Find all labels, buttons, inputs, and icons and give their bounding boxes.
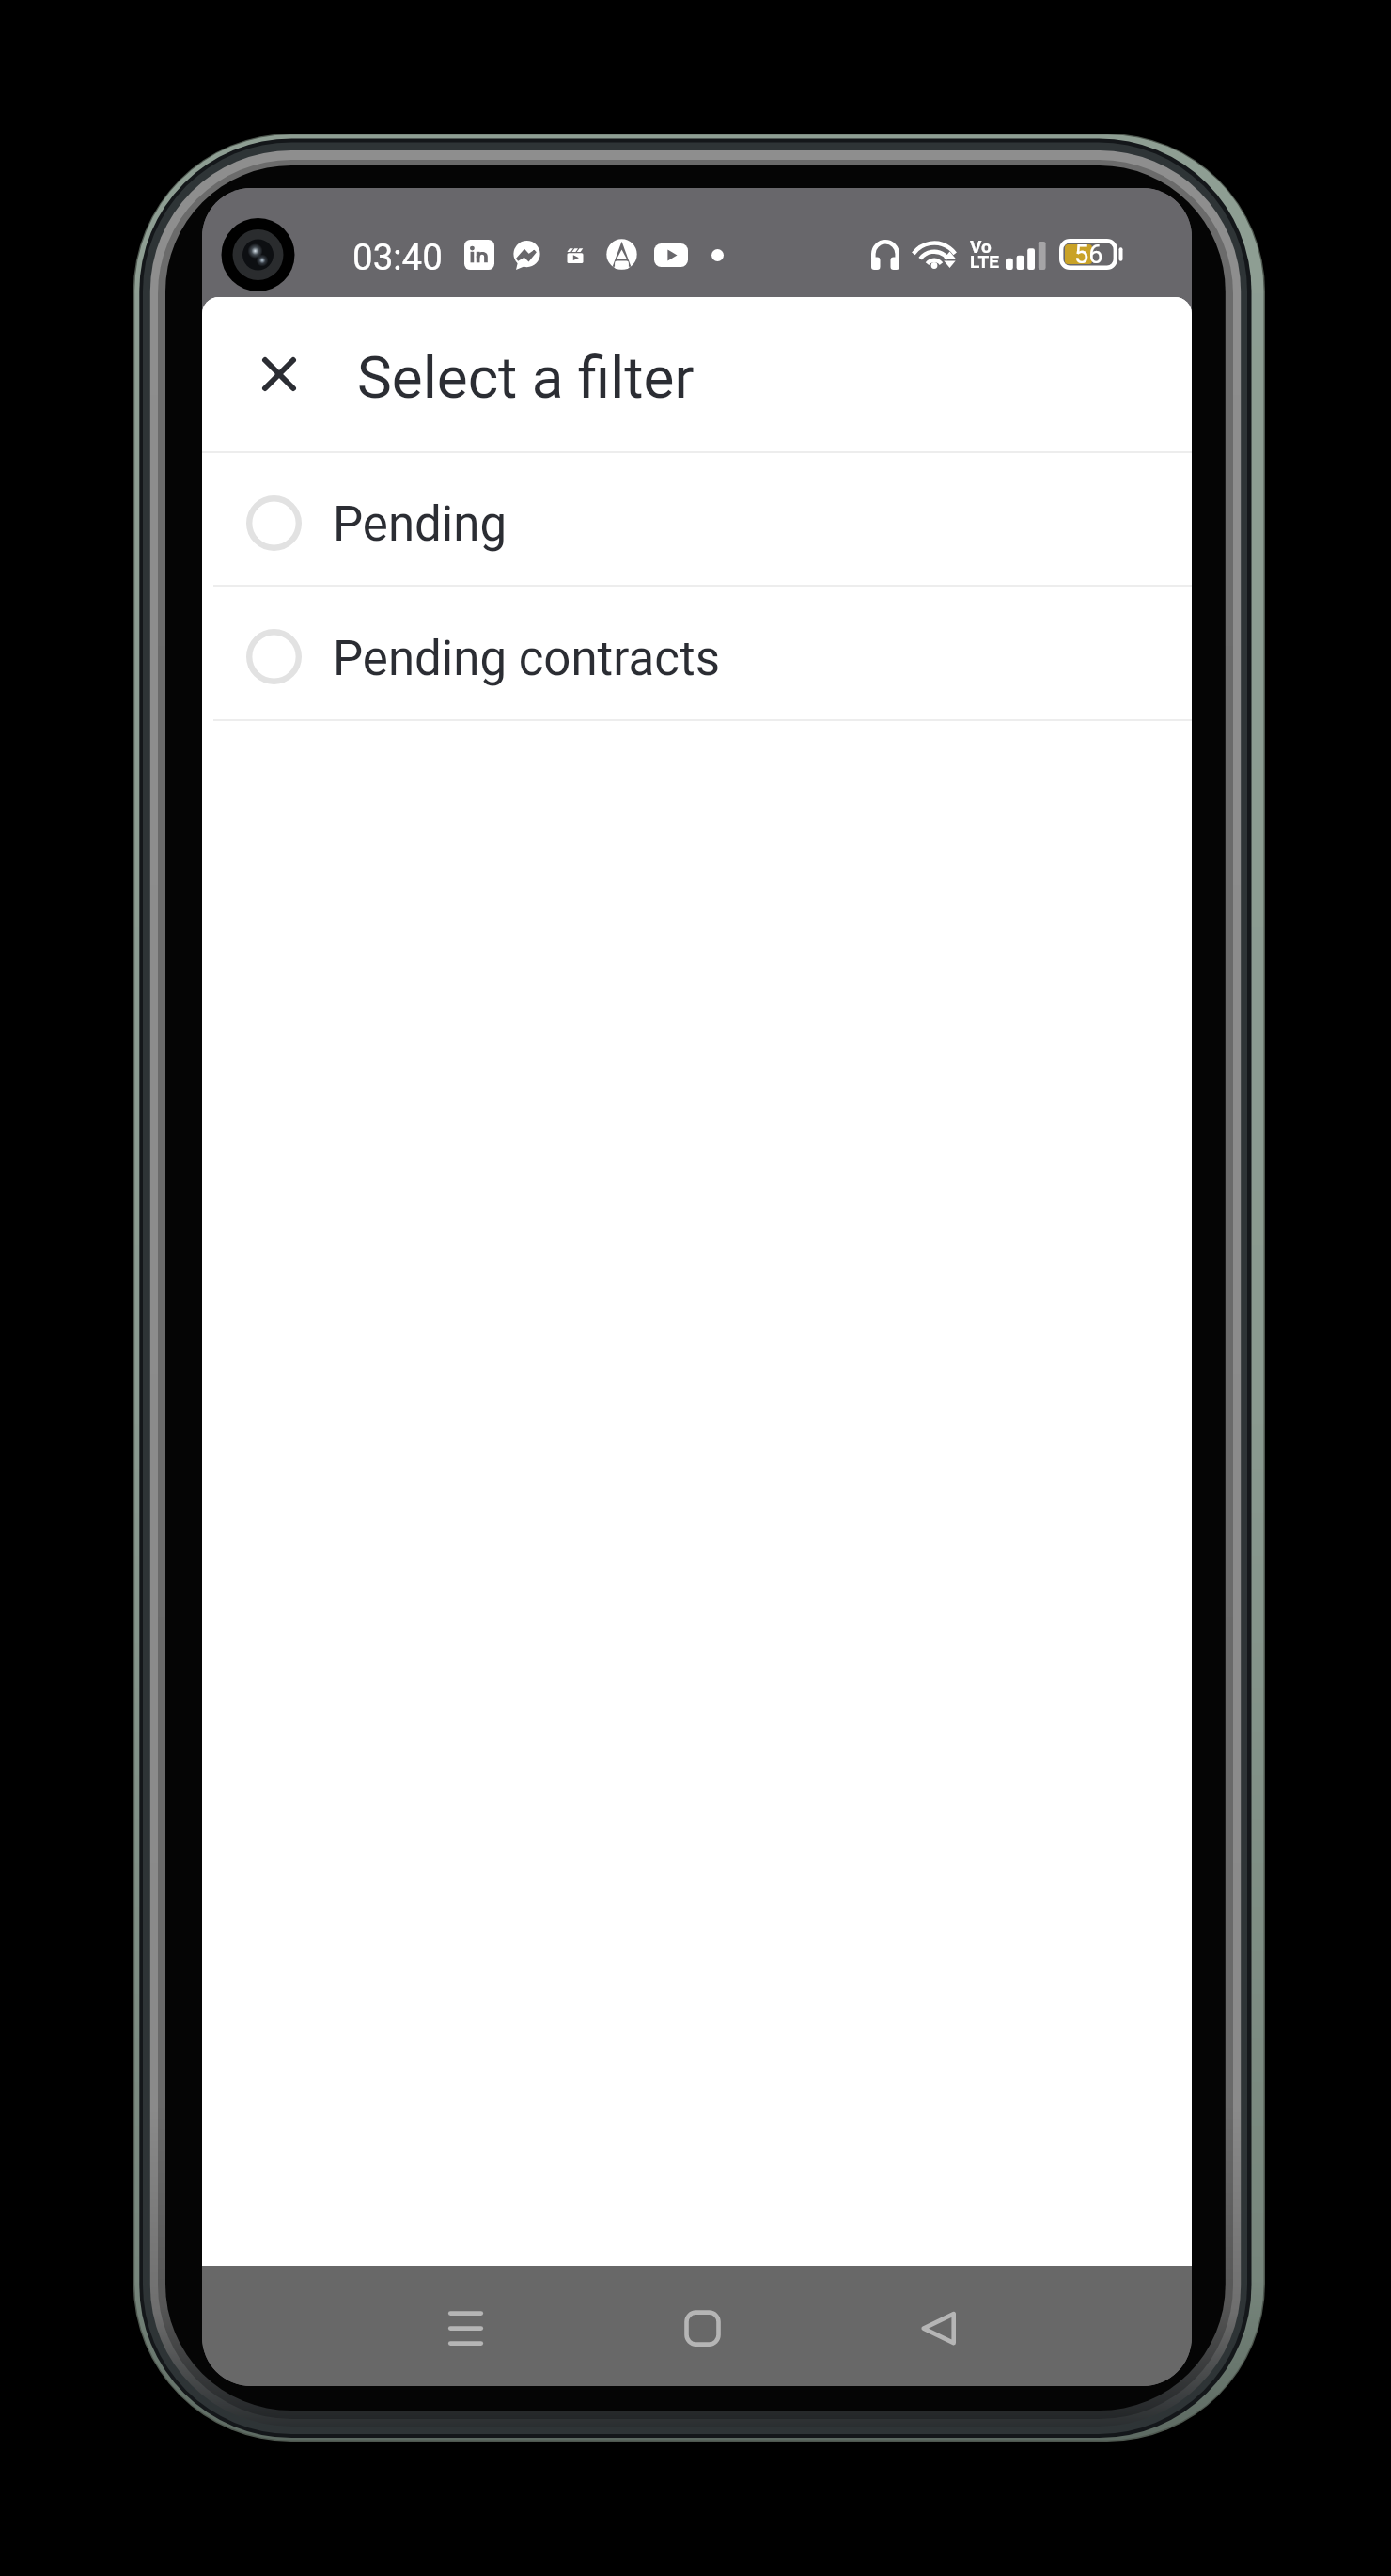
button[interactable]: Back bbox=[885, 2266, 992, 2386]
button[interactable]: Pending bbox=[202, 453, 1192, 585]
staticText: 56 bbox=[1074, 240, 1103, 270]
staticText: 03:40 bbox=[352, 236, 443, 278]
staticText: Pending contracts bbox=[333, 631, 721, 687]
button[interactable]: Home bbox=[649, 2266, 756, 2386]
staticText: Vo bbox=[970, 236, 992, 257]
staticText: Pending bbox=[333, 496, 508, 553]
button[interactable]: Close bbox=[234, 329, 324, 419]
button[interactable]: Pending contracts bbox=[202, 587, 1192, 719]
staticText: Select a filter bbox=[357, 343, 695, 412]
button[interactable]: Recent apps bbox=[413, 2266, 519, 2386]
staticText: LTE bbox=[970, 251, 999, 272]
